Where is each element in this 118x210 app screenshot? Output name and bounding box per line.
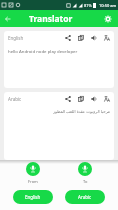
button[interactable] — [26, 162, 40, 176]
button[interactable] — [5, 16, 11, 22]
button[interactable] — [65, 96, 71, 102]
staticText: Translator — [29, 13, 73, 25]
button[interactable] — [91, 35, 97, 41]
button[interactable] — [65, 35, 71, 41]
button[interactable] — [78, 35, 84, 41]
staticText: To — [83, 179, 88, 184]
staticText: English — [25, 194, 41, 200]
staticText: Arabic — [8, 96, 22, 102]
staticText: مرحبا الروبوت عقدة اللعب المطور — [8, 109, 110, 114]
button[interactable] — [91, 96, 97, 102]
button[interactable] — [104, 96, 110, 102]
staticText: From — [28, 179, 38, 184]
staticText: 81% — [84, 3, 92, 8]
button[interactable]: English — [13, 190, 53, 204]
button[interactable] — [104, 15, 112, 23]
staticText: 10:50 am — [99, 3, 117, 8]
button[interactable] — [78, 96, 84, 102]
button[interactable] — [104, 35, 110, 41]
button[interactable] — [78, 162, 92, 176]
staticText: Arabic — [78, 194, 92, 200]
button[interactable]: Arabic — [65, 190, 105, 204]
staticText: English — [8, 35, 24, 41]
staticText: hello Android node play developer — [8, 48, 78, 54]
